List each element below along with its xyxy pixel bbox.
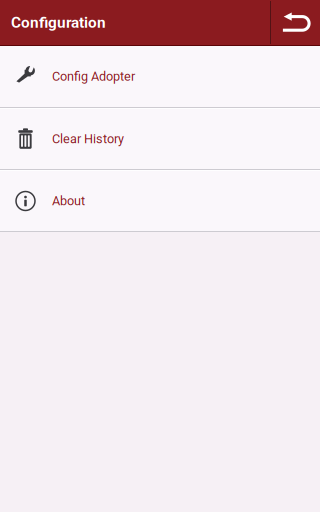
button[interactable]: About bbox=[0, 171, 320, 231]
staticText: About bbox=[52, 194, 85, 208]
button[interactable]: Config Adopter bbox=[0, 46, 320, 107]
button[interactable]: Clear History bbox=[0, 109, 320, 169]
staticText: Config Adopter bbox=[52, 69, 135, 84]
staticText: Configuration bbox=[11, 13, 106, 31]
staticText: Clear History bbox=[52, 132, 124, 146]
button[interactable]: Back bbox=[271, 0, 320, 45]
